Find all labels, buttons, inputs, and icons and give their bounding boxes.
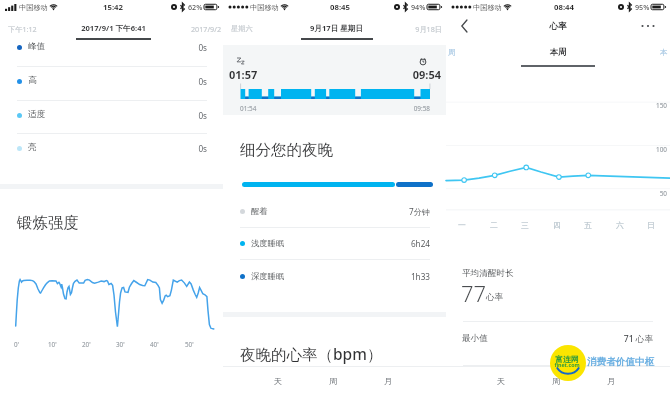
staticText: 150 <box>632 101 667 110</box>
staticText: 中国移动 <box>19 3 48 12</box>
staticText: 细分您的夜晚 <box>240 140 333 160</box>
staticText: 三 <box>521 220 529 230</box>
staticText: 本 <box>660 48 668 57</box>
staticText: 富连网 <box>554 354 580 364</box>
staticText: 100 <box>632 145 667 154</box>
staticText: 0s <box>170 143 207 154</box>
staticText: 锻炼强度 <box>17 213 79 233</box>
staticText: 亮 <box>28 142 37 153</box>
staticText: 0s <box>170 110 207 121</box>
staticText: 四 <box>553 220 561 230</box>
staticText: 10' <box>48 340 57 349</box>
button[interactable]: 浅度睡眠 <box>223 227 446 259</box>
staticText: 二 <box>490 220 498 230</box>
button[interactable]: 月 <box>361 366 416 396</box>
staticText: 深度睡眠 <box>251 271 285 281</box>
staticText: 天 <box>274 376 283 386</box>
button[interactable]: 适度 <box>0 99 223 132</box>
staticText: 心率 <box>486 292 504 303</box>
staticText: 天 <box>497 376 506 386</box>
staticText: 94% <box>411 2 426 12</box>
staticText: 周 <box>552 376 561 386</box>
staticText: 9月17日 星期日 <box>284 23 389 33</box>
staticText: 日 <box>647 220 655 230</box>
staticText: 0s <box>170 42 207 53</box>
staticText: 20' <box>82 340 91 349</box>
staticText: 9月18日 <box>385 24 442 34</box>
staticText: 08:44 <box>554 2 575 13</box>
staticText: 周 <box>329 376 338 386</box>
button[interactable]: More options <box>638 16 658 36</box>
staticText: 中国移动 <box>473 3 502 12</box>
staticText: 最小值 <box>462 333 488 344</box>
staticText: 2017/9/1 下午6:41 <box>61 23 166 33</box>
staticText: 月 <box>607 376 616 386</box>
staticText: 08:45 <box>330 2 351 13</box>
staticText: 峰值 <box>28 41 46 52</box>
staticText: 95% <box>635 2 650 12</box>
staticText: 高 <box>28 75 37 86</box>
staticText: 心率 <box>538 21 578 32</box>
staticText: 五 <box>584 220 592 230</box>
button[interactable]: 峰值 <box>0 31 223 64</box>
staticText: 星期六 <box>231 24 253 33</box>
staticText: 50' <box>185 340 194 349</box>
staticText: 本周 <box>538 47 578 58</box>
button[interactable]: 周 <box>529 366 584 396</box>
staticText: 消费者价值中枢 <box>587 356 655 368</box>
button[interactable]: Back <box>454 16 474 36</box>
staticText: 夜晚的心率（bpm） <box>240 343 383 364</box>
staticText: 09:58 <box>400 104 430 113</box>
button[interactable]: 亮 <box>0 132 223 165</box>
button[interactable]: 月 <box>584 366 639 396</box>
staticText: 0' <box>14 340 20 349</box>
staticText: 01:54 <box>240 104 257 113</box>
staticText: 六 <box>616 220 624 230</box>
button[interactable]: 天 <box>251 366 306 396</box>
staticText: 适度 <box>28 109 46 120</box>
staticText: 40' <box>150 340 159 349</box>
staticText: 1h33 <box>383 271 430 282</box>
staticText: 30' <box>116 340 125 349</box>
staticText: 平均清醒时长 <box>462 268 514 279</box>
staticText: 0s <box>170 76 207 87</box>
staticText: 6h24 <box>383 238 430 249</box>
staticText: 71 心率 <box>596 333 653 345</box>
staticText: 50 <box>632 189 667 198</box>
staticText: 09:54 <box>395 67 441 82</box>
button[interactable]: 深度睡眠 <box>223 260 446 292</box>
staticText: 中国移动 <box>250 3 279 12</box>
staticText: 周 <box>448 48 456 57</box>
button[interactable]: 最小值 <box>446 322 670 364</box>
button[interactable]: 天 <box>474 366 529 396</box>
button[interactable]: 周 <box>306 366 361 396</box>
staticText: 浅度睡眠 <box>251 238 285 248</box>
staticText: 7分钟 <box>383 206 430 217</box>
staticText: finet.com <box>554 361 580 368</box>
button[interactable]: 醒着 <box>223 195 446 227</box>
staticText: 62% <box>188 2 203 12</box>
staticText: 一 <box>458 220 466 230</box>
staticText: 2017/9/2 <box>162 24 221 34</box>
staticText: 月 <box>384 376 393 386</box>
staticText: 下午1:12 <box>8 24 37 34</box>
staticText: 77 <box>461 278 487 308</box>
staticText: 01:57 <box>229 67 258 82</box>
staticText: 15:42 <box>103 2 124 13</box>
staticText: 醒着 <box>251 206 268 216</box>
button[interactable]: 高 <box>0 65 223 98</box>
